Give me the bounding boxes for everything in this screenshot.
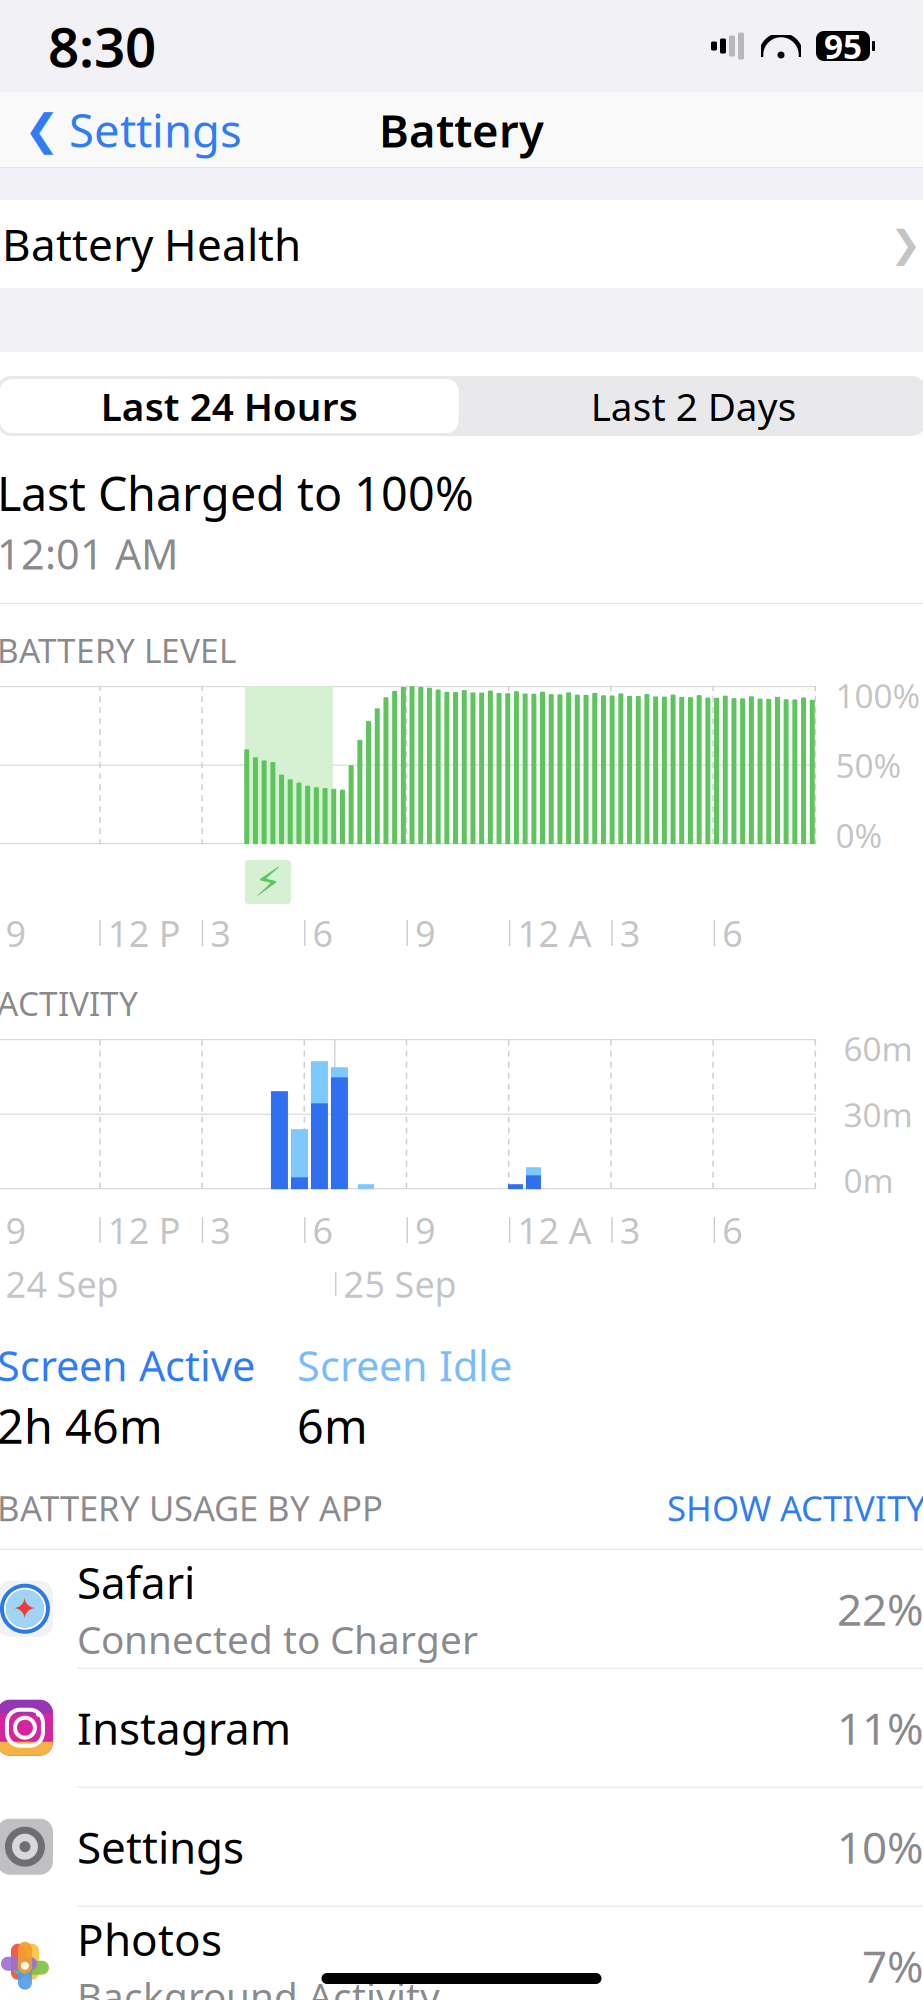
staticText: 9 [5,1206,26,1254]
button[interactable]: Last 24 Hours [0,376,461,436]
staticText: ❯ [890,223,921,265]
staticText: BATTERY USAGE BY APP [0,1485,383,1531]
staticText: 6 [313,1206,334,1254]
staticText: 10% [837,1817,923,1876]
staticText: 12:01 AM [0,526,178,581]
staticText: Last Charged to 100% [0,462,474,524]
staticText: 8:30 [48,10,156,82]
staticText: 9 [5,909,26,957]
staticText: 0% [836,813,883,857]
staticText: 22% [837,1579,923,1638]
button[interactable]: Photos [0,1907,923,2000]
staticText: Photos [77,1910,222,1968]
staticText: 100% [836,673,921,717]
staticText: 12 A [517,909,591,957]
staticText: 3 [210,1206,231,1254]
staticText: 95 [824,24,862,68]
staticText: 3 [620,909,641,957]
staticText: 11% [837,1698,923,1757]
staticText: Background Activity [77,1970,440,2000]
staticText: Screen Active [0,1338,255,1393]
staticText: Battery Health [2,215,301,273]
staticText: 0m [844,1158,894,1202]
staticText: ✦ [12,1592,37,1625]
staticText: Screen Idle [297,1338,512,1393]
staticText: 6m [297,1395,368,1457]
staticText: 60m [844,1026,913,1070]
staticText: Instagram [77,1698,291,1757]
staticText: 50% [836,743,902,787]
staticText: Battery [379,100,544,160]
staticText: 2h 46m [0,1395,163,1457]
staticText: 9 [415,1206,436,1254]
staticText: BATTERY LEVEL [0,628,236,672]
staticText: SHOW ACTIVITY [667,1485,923,1531]
button[interactable]: SHOW ACTIVITY [667,1485,923,1531]
staticText: 12 P [108,909,181,957]
staticText: 24 Sep [5,1260,118,1308]
staticText: Settings [77,1817,244,1876]
button[interactable]: Last 2 Days [461,379,923,433]
button[interactable]: ❮ [0,90,242,170]
staticText: Last 24 Hours [101,380,358,432]
staticText: 3 [620,1206,641,1254]
button[interactable]: ✦ [0,1550,923,1669]
staticText: Safari [77,1553,195,1611]
staticText: 3 [210,909,231,957]
staticText: Settings [69,100,242,160]
staticText: Last 2 Days [591,380,797,432]
staticText: 6 [313,909,334,957]
staticText: 9 [415,909,436,957]
staticText: 30m [844,1092,913,1136]
staticText: 6 [722,909,743,957]
staticText: 12 P [108,1206,181,1254]
staticText: ⚡︎ [254,859,282,905]
staticText: 6 [722,1206,743,1254]
button[interactable]: Settings [0,1788,923,1907]
staticText: ACTIVITY [0,981,138,1025]
staticText: 7% [862,1936,923,1995]
staticText: 12 A [517,1206,591,1254]
staticText: Connected to Charger [77,1613,478,1664]
button[interactable]: Instagram [0,1669,923,1788]
button[interactable]: Battery Health [0,200,923,288]
staticText: 25 Sep [343,1260,456,1308]
staticText: ❮ [24,106,60,154]
